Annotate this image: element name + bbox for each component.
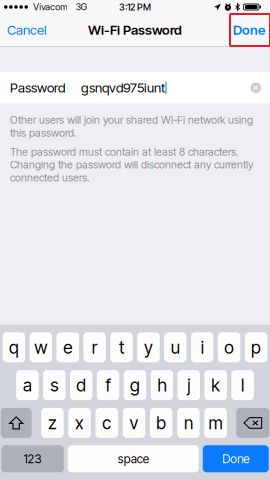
staticText: s bbox=[50, 375, 58, 396]
button[interactable]: space bbox=[68, 445, 199, 472]
staticText: The password must contain at least 8 cha… bbox=[10, 145, 253, 184]
button[interactable]: 123 bbox=[1, 445, 64, 472]
staticText: t bbox=[119, 337, 124, 358]
button[interactable]: i bbox=[191, 332, 213, 362]
staticText: z bbox=[48, 412, 57, 433]
staticText: 3:12 PM bbox=[119, 1, 151, 13]
button[interactable]: d bbox=[70, 370, 92, 400]
button[interactable]: s bbox=[43, 370, 66, 400]
button[interactable]: k bbox=[204, 370, 227, 400]
staticText: a bbox=[23, 375, 32, 396]
staticText: space bbox=[118, 451, 149, 466]
staticText: Done bbox=[222, 451, 249, 466]
button[interactable]: a bbox=[16, 370, 39, 400]
button[interactable]: m bbox=[204, 408, 227, 438]
button[interactable]: g bbox=[124, 370, 146, 400]
button[interactable]: x bbox=[68, 408, 91, 438]
button[interactable]: h bbox=[151, 370, 173, 400]
staticText: 123 bbox=[23, 451, 41, 466]
staticText: v bbox=[129, 412, 138, 433]
button[interactable]: y bbox=[137, 332, 160, 362]
button[interactable]: Done bbox=[203, 445, 269, 472]
staticText: o bbox=[224, 337, 234, 358]
button[interactable]: c bbox=[96, 408, 118, 438]
staticText: y bbox=[144, 337, 153, 358]
staticText: Done bbox=[233, 22, 265, 38]
staticText: f bbox=[106, 375, 111, 396]
staticText: m bbox=[209, 412, 223, 433]
staticText: g bbox=[130, 375, 140, 396]
button[interactable]: u bbox=[164, 332, 187, 362]
button[interactable]: b bbox=[150, 408, 172, 438]
staticText: Vivacom bbox=[33, 1, 67, 12]
button[interactable]: p bbox=[245, 332, 267, 362]
button[interactable]: f bbox=[97, 370, 119, 400]
button[interactable]: l bbox=[231, 370, 254, 400]
staticText: 3G bbox=[76, 1, 87, 12]
button[interactable]: Done bbox=[228, 14, 270, 46]
staticText: h bbox=[157, 375, 166, 396]
staticText: n bbox=[184, 412, 193, 433]
staticText: Other users will join your shared Wi-Fi … bbox=[10, 113, 253, 139]
staticText: k bbox=[211, 375, 220, 396]
button[interactable]: e bbox=[56, 332, 79, 362]
button[interactable]: r bbox=[83, 332, 106, 362]
staticText: Wi-Fi Password bbox=[88, 22, 182, 38]
button[interactable]: n bbox=[177, 408, 200, 438]
button[interactable]: t bbox=[110, 332, 133, 362]
staticText: x bbox=[75, 412, 84, 433]
staticText: gsnqvd975iunt bbox=[81, 80, 165, 96]
staticText: i bbox=[201, 337, 204, 358]
button[interactable]: Delete bbox=[236, 408, 269, 438]
button[interactable]: v bbox=[123, 408, 145, 438]
staticText: u bbox=[171, 337, 180, 358]
staticText: c bbox=[102, 412, 111, 433]
staticText: r bbox=[92, 337, 98, 358]
button[interactable]: Cancel bbox=[0, 14, 54, 46]
staticText: l bbox=[241, 375, 244, 396]
button[interactable]: j bbox=[178, 370, 200, 400]
staticText: Cancel bbox=[7, 22, 47, 38]
button[interactable]: z bbox=[41, 408, 64, 438]
staticText: q bbox=[9, 337, 19, 358]
staticText: j bbox=[187, 375, 190, 396]
button[interactable]: o bbox=[218, 332, 240, 362]
staticText: w bbox=[34, 337, 47, 358]
staticText: d bbox=[76, 375, 86, 396]
staticText: e bbox=[63, 337, 72, 358]
button[interactable]: w bbox=[30, 332, 52, 362]
button[interactable]: q bbox=[3, 332, 25, 362]
button[interactable]: Shift bbox=[1, 408, 32, 438]
staticText: b bbox=[156, 412, 166, 433]
staticText: Password bbox=[10, 80, 65, 96]
staticText: p bbox=[251, 337, 261, 358]
